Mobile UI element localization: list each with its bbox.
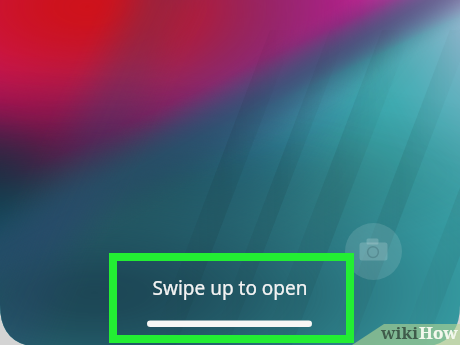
staticText: How — [419, 321, 458, 344]
button[interactable]: Swipe up to open — [0, 275, 460, 301]
staticText: Swipe up to open — [0, 275, 460, 301]
staticText: wiki — [381, 321, 419, 344]
